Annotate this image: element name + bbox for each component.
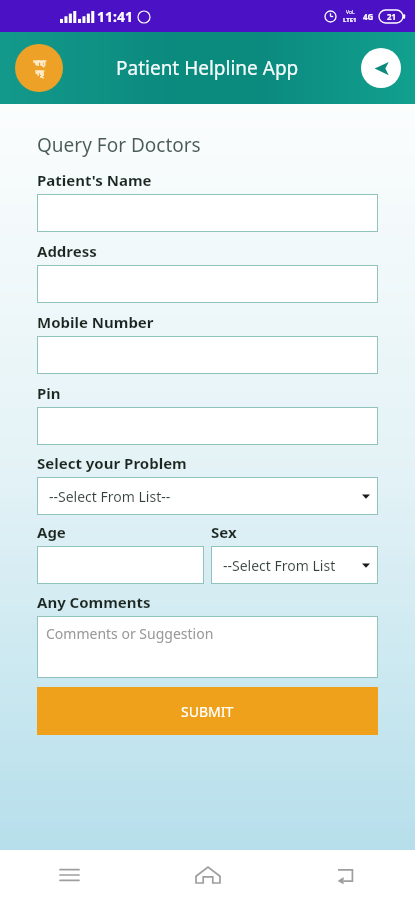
staticText: 21 [387, 11, 397, 22]
button[interactable] [37, 265, 378, 303]
button[interactable]: Recents [0, 850, 139, 900]
button[interactable]: Comments or Suggestion [37, 616, 378, 678]
button[interactable] [37, 546, 204, 584]
button[interactable]: --Select From List-- [37, 477, 378, 515]
staticText: Comments or Suggestion [46, 624, 214, 643]
staticText: --Select From List [223, 556, 336, 575]
staticText: Query For Doctors [37, 132, 201, 158]
staticText: Address [37, 241, 97, 261]
staticText: LTE1 [343, 16, 357, 24]
staticText: Patient's Name [37, 170, 152, 190]
staticText: 11:41 [97, 7, 133, 26]
button[interactable] [37, 194, 378, 232]
staticText: Select your Problem [37, 453, 187, 473]
staticText: স্বাস্থ্য বন্ধু [33, 59, 46, 78]
button[interactable]: Back [361, 48, 401, 88]
staticText: VoL [346, 9, 355, 16]
button[interactable]: App logo [15, 44, 63, 92]
staticText: Sex [211, 522, 237, 542]
button[interactable] [37, 336, 378, 374]
button[interactable]: SUBMIT [37, 687, 378, 735]
staticText: 4G [363, 11, 374, 22]
staticText: --Select From List-- [49, 487, 171, 506]
button[interactable]: Back [277, 850, 415, 900]
staticText: Age [37, 522, 66, 542]
staticText: Patient Helpline App [116, 55, 299, 81]
button[interactable]: Home [139, 850, 277, 900]
button[interactable] [37, 407, 378, 445]
staticText: Any Comments [37, 592, 151, 612]
staticText: Pin [37, 383, 61, 403]
staticText: SUBMIT [181, 702, 234, 721]
button[interactable]: --Select From List [211, 546, 378, 584]
staticText: Mobile Number [37, 312, 154, 332]
